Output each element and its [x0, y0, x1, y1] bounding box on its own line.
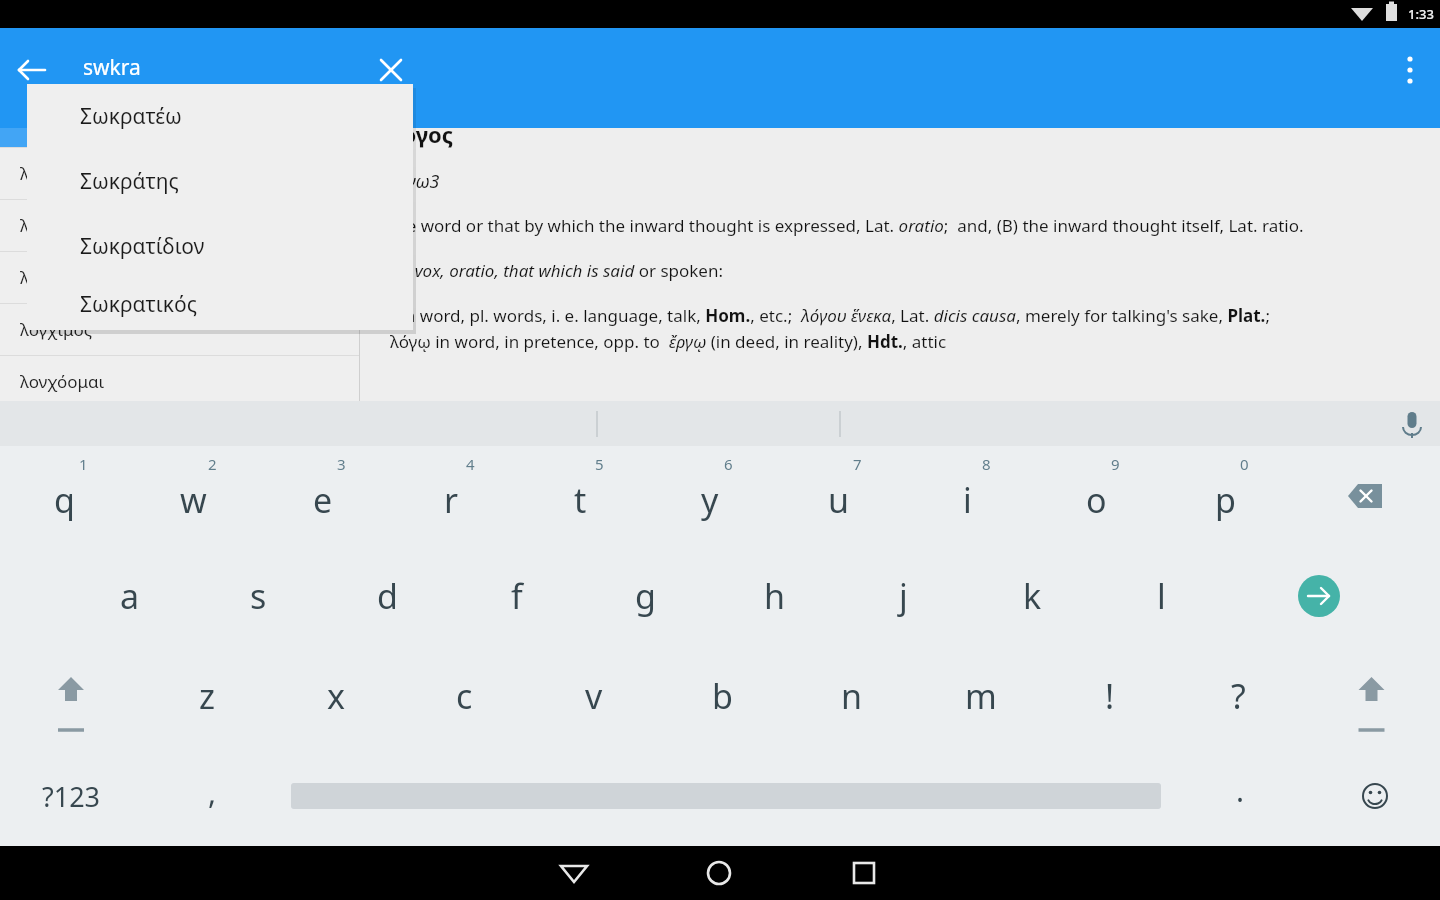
- staticText: ,: [208, 772, 217, 813]
- staticText: 4: [466, 454, 475, 474]
- staticText: j: [899, 573, 908, 619]
- button[interactable]: l: [1097, 546, 1226, 646]
- button[interactable]: s: [194, 546, 323, 646]
- staticText: Σωκρατικός: [80, 290, 197, 319]
- button[interactable]: Σωκρατίδιον: [27, 214, 413, 279]
- staticText: Σωκράτης: [80, 167, 179, 196]
- button[interactable]: ?: [1174, 646, 1303, 746]
- button[interactable]: Emoji: [1310, 746, 1440, 846]
- staticText: 7: [853, 454, 862, 474]
- staticText: .: [1236, 770, 1245, 811]
- button[interactable]: .: [1170, 746, 1310, 846]
- button[interactable]: j: [839, 546, 968, 646]
- button[interactable]: k: [968, 546, 1097, 646]
- staticText: d: [377, 573, 398, 619]
- staticText: r: [444, 477, 459, 523]
- staticText: g: [635, 573, 656, 619]
- button[interactable]: λογχοφορος: [0, 199, 360, 251]
- button[interactable]: Σωκρατέω: [27, 84, 413, 149]
- button[interactable]: Space: [282, 746, 1170, 846]
- staticText: b: [712, 673, 733, 719]
- staticText: u: [828, 477, 850, 523]
- button[interactable]: λογχωτος: [0, 251, 360, 303]
- staticText: 6: [724, 454, 733, 474]
- button[interactable]: v: [529, 646, 658, 746]
- button[interactable]: 4: [387, 446, 516, 546]
- staticText: ?: [1231, 673, 1246, 719]
- staticText: 0: [1240, 454, 1249, 474]
- button[interactable]: d: [323, 546, 452, 646]
- staticText: Σωκρατίδιον: [80, 232, 205, 261]
- button[interactable]: m: [916, 646, 1045, 746]
- staticText: 3: [337, 454, 346, 474]
- staticText: λογχωτος: [20, 266, 97, 289]
- staticText: o: [1086, 477, 1107, 523]
- button[interactable]: n: [787, 646, 916, 746]
- staticText: e: [313, 477, 333, 523]
- staticText: swkra: [83, 53, 141, 82]
- staticText: w: [180, 477, 207, 523]
- button[interactable]: g: [581, 546, 710, 646]
- staticText: λογχοειδης: [20, 162, 110, 185]
- button[interactable]: Recent apps: [840, 849, 888, 897]
- staticText: y: [701, 477, 719, 523]
- button[interactable]: !: [1045, 646, 1174, 746]
- button[interactable]: ,: [142, 746, 282, 846]
- button[interactable]: Navigate up: [10, 48, 54, 92]
- button[interactable]: b: [658, 646, 787, 746]
- staticText: 1: [79, 454, 88, 474]
- button[interactable]: 6: [645, 446, 774, 546]
- button[interactable]: 2: [129, 446, 258, 546]
- button[interactable]: 0: [1161, 446, 1290, 546]
- button[interactable]: Home: [695, 849, 743, 897]
- staticText: f: [511, 573, 523, 619]
- button[interactable]: 1: [0, 446, 129, 546]
- staticText: 1:33: [1408, 5, 1434, 23]
- button[interactable]: 9: [1032, 446, 1161, 546]
- staticText: v: [585, 673, 603, 719]
- button[interactable]: f: [452, 546, 581, 646]
- button[interactable]: λογχιμος: [0, 95, 360, 147]
- button[interactable]: λογχιμος: [0, 303, 360, 355]
- staticText: a: [120, 573, 140, 619]
- button[interactable]: 7: [774, 446, 903, 546]
- staticText: 2: [208, 454, 217, 474]
- staticText: 8: [982, 454, 991, 474]
- button[interactable]: a: [65, 546, 194, 646]
- staticText: Σωκρατέω: [80, 102, 182, 131]
- button[interactable]: Search: [1226, 546, 1440, 646]
- button[interactable]: h: [710, 546, 839, 646]
- button[interactable]: Voice input: [1392, 404, 1432, 444]
- staticText: at. vox, oratio, that which is said or s…: [390, 259, 723, 282]
- button[interactable]: 8: [903, 446, 1032, 546]
- staticText: λογχιμος: [20, 318, 93, 341]
- button[interactable]: λονχόομαι: [0, 355, 360, 407]
- button[interactable]: Σωκράτης: [27, 149, 413, 214]
- staticText: h: [764, 573, 786, 619]
- button[interactable]: Shift: [1303, 646, 1440, 746]
- button[interactable]: 5: [516, 446, 645, 546]
- staticText: I. a word, pl. words, i. e. language, ta…: [390, 304, 1270, 353]
- staticText: n: [841, 673, 863, 719]
- button[interactable]: λογχοειδης: [0, 147, 360, 199]
- button[interactable]: More options: [1388, 48, 1432, 92]
- staticText: !: [1105, 673, 1115, 719]
- button[interactable]: Back: [550, 849, 598, 897]
- button[interactable]: z: [142, 646, 271, 746]
- staticText: ?123: [42, 778, 101, 815]
- staticText: λογχοφορος: [20, 214, 119, 237]
- staticText: q: [54, 477, 75, 523]
- staticText: l: [1157, 573, 1166, 619]
- staticText: x: [327, 673, 345, 719]
- button[interactable]: c: [400, 646, 529, 746]
- button[interactable]: Clear query: [369, 48, 413, 92]
- staticText: s: [250, 573, 267, 619]
- button[interactable]: Delete: [1290, 446, 1440, 546]
- button[interactable]: Σωκρατικός: [27, 279, 413, 330]
- button[interactable]: Shift: [0, 646, 142, 746]
- staticText: i: [963, 477, 972, 523]
- staticText: p: [1215, 477, 1236, 523]
- button[interactable]: ?123: [0, 746, 142, 846]
- button[interactable]: x: [271, 646, 400, 746]
- button[interactable]: 3: [258, 446, 387, 546]
